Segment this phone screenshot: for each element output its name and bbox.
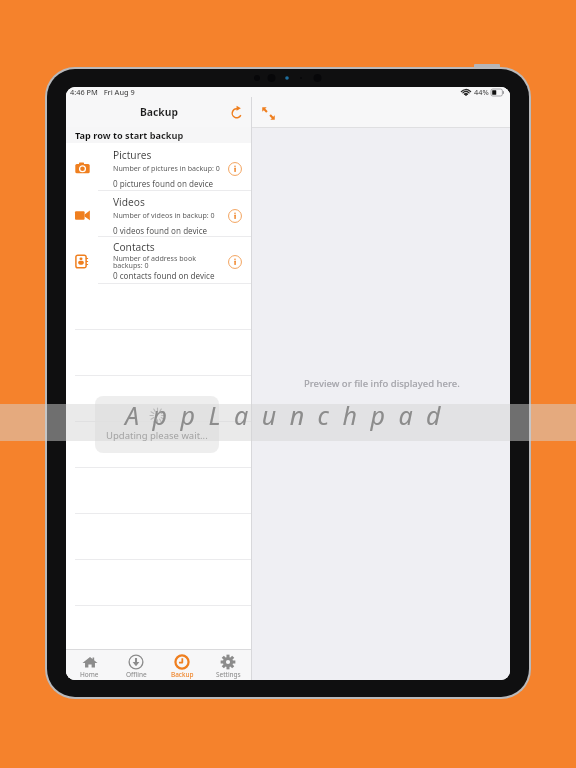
staticText: Offline [126,670,147,679]
button[interactable]: Info [225,206,245,226]
button[interactable]: Videos [66,191,251,237]
staticText: Number of pictures in backup: 0 [113,163,220,173]
button[interactable]: Pictures [66,144,251,191]
staticText: Contacts [113,240,155,254]
staticText: Videos [113,195,145,209]
button[interactable]: Contacts [66,237,251,284]
button[interactable]: Home [66,650,113,680]
staticText: Settings [216,670,241,679]
staticText: Updating please wait... [106,429,208,442]
button[interactable]: Backup [159,650,205,680]
staticText: 0 contacts found on device [113,270,215,281]
staticText: 4:46 PM Fri Aug 9 [70,87,135,97]
staticText: Home [80,670,99,679]
button[interactable]: Expand [257,102,280,125]
button[interactable]: Settings [205,650,251,680]
button[interactable]: Info [225,159,245,179]
staticText: Preview or file info displayed here. [304,377,460,390]
staticText: Pictures [113,148,152,162]
button[interactable]: Offline [113,650,159,680]
button[interactable]: Refresh [227,102,247,122]
staticText: Backup [171,670,194,679]
staticText: 0 videos found on device [113,225,208,236]
staticText: Backup [140,105,178,119]
staticText: 44% [474,87,489,97]
staticText: AppLaunchpad [125,398,455,432]
staticText: Number of videos in backup: 0 [113,210,215,220]
staticText: 0 pictures found on device [113,178,214,189]
staticText: Tap row to start backup [75,129,184,142]
button[interactable]: Info [225,252,245,272]
staticText: Number of address book backups: 0 [113,253,196,270]
